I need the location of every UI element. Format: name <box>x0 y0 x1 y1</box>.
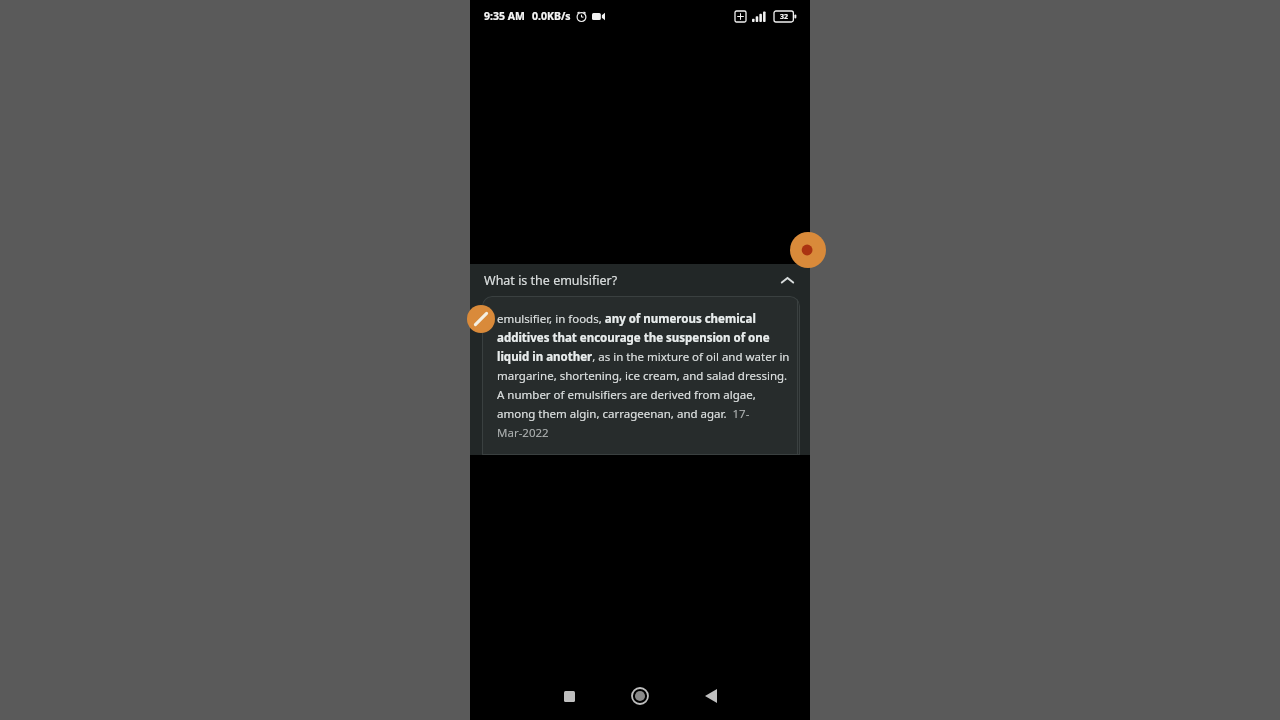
button[interactable]: What is the emulsifier? <box>470 264 810 296</box>
staticText: emulsifier, in foods, any of numerous ch… <box>497 311 790 440</box>
button[interactable]: emulsifier, in foods, any of numerous ch… <box>482 296 800 455</box>
button[interactable]: Back <box>687 672 735 720</box>
staticText: What is the emulsifier? <box>484 272 618 289</box>
button[interactable]: Collapse <box>774 267 800 293</box>
staticText: 9:35 AM <box>484 9 525 23</box>
staticText: 0.0KB/s <box>532 9 571 23</box>
other: Pointer <box>467 305 495 333</box>
staticText: 32 <box>780 12 789 22</box>
button[interactable]: Home <box>616 672 664 720</box>
button[interactable]: Recent apps <box>545 672 593 720</box>
